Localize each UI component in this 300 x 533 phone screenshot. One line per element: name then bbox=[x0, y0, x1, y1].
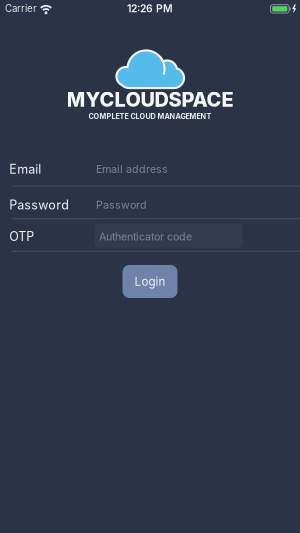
button[interactable]: OTP bbox=[0, 220, 300, 252]
staticText: MYCLOUDSPACE bbox=[66, 87, 233, 111]
staticText: OTP bbox=[9, 229, 34, 244]
staticText: Authenticator code bbox=[99, 230, 192, 243]
staticText: Email address bbox=[96, 163, 168, 176]
staticText: Carrier bbox=[5, 3, 37, 14]
staticText: Password bbox=[96, 198, 147, 211]
staticText: 12:26 PM bbox=[127, 2, 173, 15]
staticText: Login bbox=[134, 274, 165, 288]
button[interactable]: Login bbox=[122, 265, 177, 298]
button[interactable]: Email bbox=[0, 153, 300, 185]
staticText: Loading... bbox=[142, 259, 189, 272]
staticText: Email bbox=[9, 162, 41, 177]
staticText: Password bbox=[9, 197, 69, 212]
staticText: COMPLETE CLOUD MANAGEMENT bbox=[88, 112, 211, 121]
button[interactable]: Password bbox=[0, 189, 300, 221]
